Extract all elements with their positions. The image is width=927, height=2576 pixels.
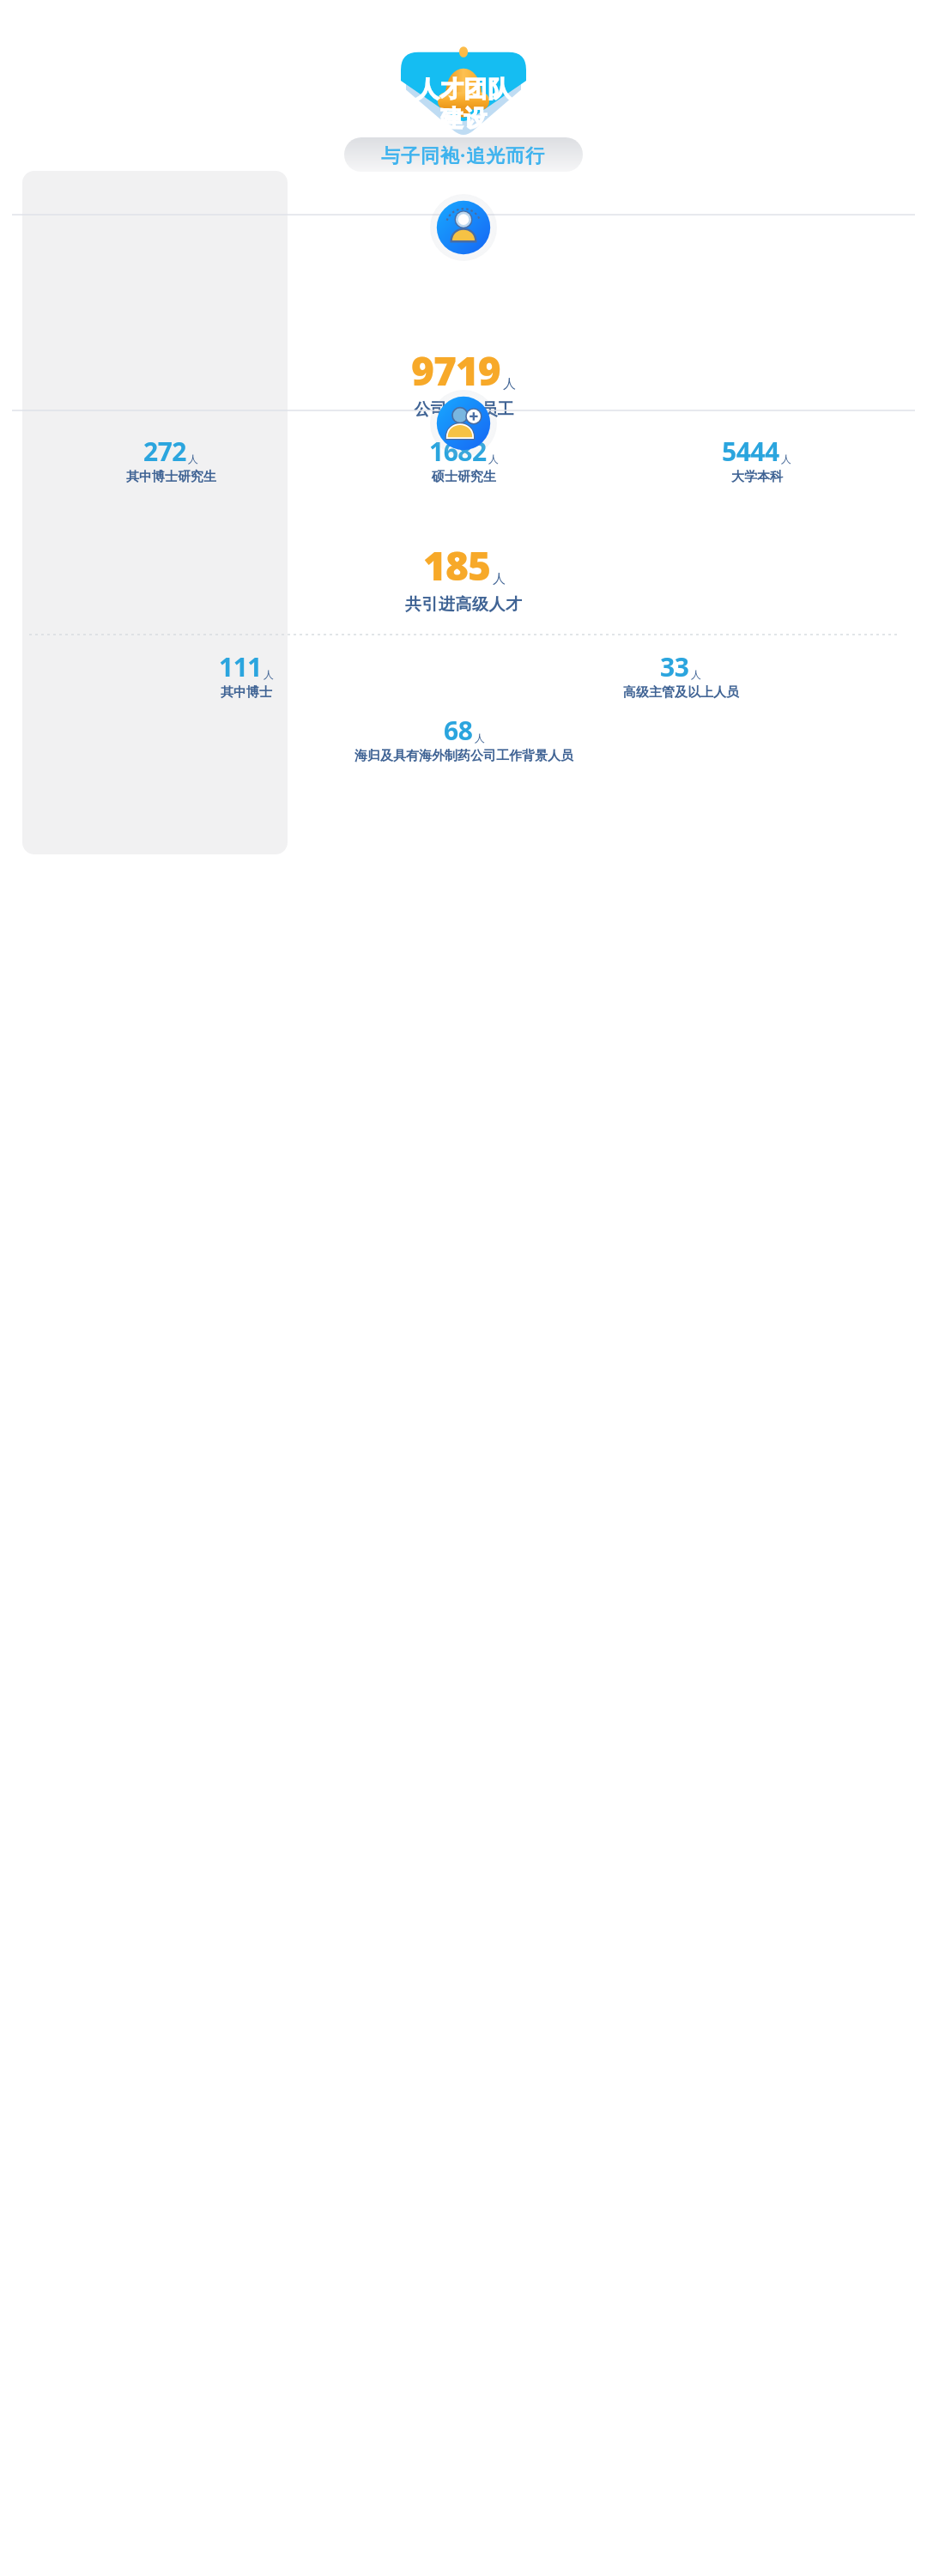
staticText: 人: [503, 376, 516, 392]
button[interactable]: 与子同袍·追光而行: [344, 137, 583, 172]
staticText: 272: [143, 434, 186, 469]
button[interactable]: 1682: [318, 434, 610, 485]
staticText: 5444: [722, 434, 779, 469]
button[interactable]: 33: [463, 649, 898, 701]
staticText: 33: [660, 649, 689, 684]
staticText: 高级主管及以上人员: [623, 684, 739, 701]
staticText: 人: [781, 453, 791, 465]
staticText: 185: [423, 538, 490, 592]
staticText: 人: [264, 668, 274, 681]
staticText: 共引进高级人才: [405, 594, 523, 615]
staticText: 68: [444, 713, 473, 748]
staticText: 9719: [411, 343, 500, 398]
staticText: 与子同袍·追光而行: [381, 142, 546, 167]
staticText: 海归及具有海外制药公司工作背景人员: [354, 748, 573, 764]
staticText: 人: [493, 571, 506, 587]
staticText: 其中博士研究生: [126, 469, 216, 485]
button[interactable]: 共引进高级人才: [430, 390, 497, 457]
staticText: 人: [488, 453, 499, 465]
staticText: 大学本科: [731, 469, 783, 485]
staticText: 1682: [429, 434, 487, 469]
staticText: 公司拥有员工: [414, 399, 514, 420]
button[interactable]: 公司拥有员工: [430, 194, 497, 261]
staticText: 111: [219, 649, 262, 684]
button[interactable]: 111: [29, 649, 463, 701]
staticText: 人: [475, 732, 485, 744]
staticText: 人: [691, 668, 701, 681]
staticText: 硕士研究生: [432, 469, 496, 485]
button[interactable]: 68: [354, 713, 573, 764]
button[interactable]: 人才团队建设: [378, 25, 549, 137]
staticText: 其中博士: [221, 684, 272, 701]
staticText: 建设: [439, 104, 488, 133]
button[interactable]: 5444: [610, 434, 903, 485]
button[interactable]: 272: [24, 434, 318, 485]
staticText: 人: [188, 453, 198, 465]
staticText: 人才团队: [415, 75, 512, 104]
